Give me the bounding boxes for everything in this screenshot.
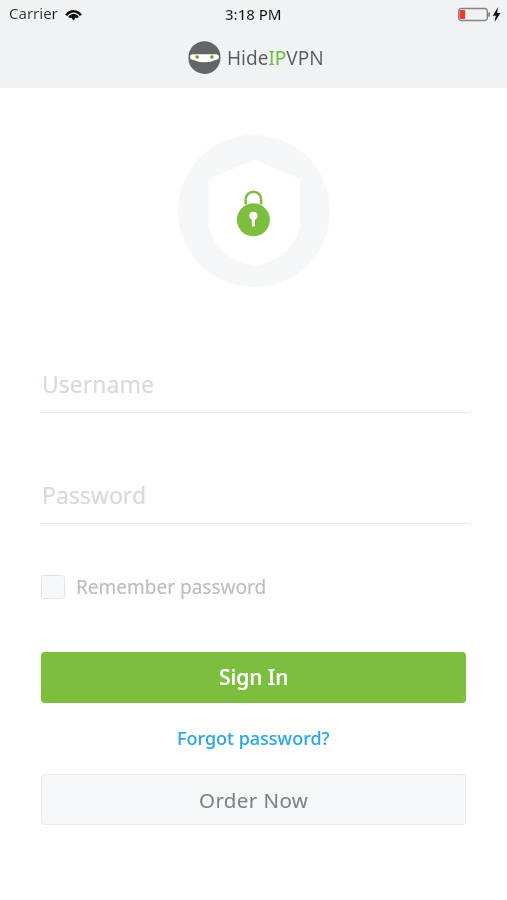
button[interactable]: Order Now (41, 774, 466, 825)
button[interactable]: Sign In (41, 652, 466, 703)
button[interactable]: Forgot password? (169, 722, 338, 755)
staticText: Order Now (199, 786, 309, 814)
staticText: Password (42, 479, 147, 510)
staticText: Carrier (9, 3, 58, 23)
staticText: Sign In (219, 663, 289, 692)
staticText: 3:18 PM (225, 4, 282, 24)
button[interactable]: Remember password (41, 574, 267, 600)
staticText: Remember password (76, 574, 267, 600)
staticText: HideIPVPN (227, 45, 324, 71)
staticText: Username (42, 368, 154, 399)
